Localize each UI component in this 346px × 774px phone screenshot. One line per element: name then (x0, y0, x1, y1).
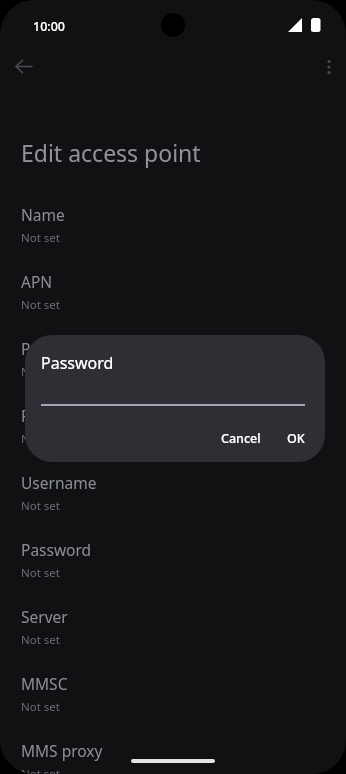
staticText: Not set (21, 766, 60, 774)
button[interactable]: Port (0, 402, 346, 460)
staticText: Password (41, 352, 114, 374)
staticText: Not set (21, 230, 60, 246)
staticText: Port (21, 405, 52, 426)
staticText: Not set (21, 431, 60, 447)
button[interactable]: MMS proxy (0, 737, 346, 774)
staticText: Not set (21, 297, 60, 313)
button[interactable]: More options (313, 51, 344, 82)
staticText: Not set (21, 364, 60, 380)
staticText: Not set (21, 632, 60, 648)
staticText: 10:00 (33, 18, 66, 35)
staticText: Cancel (221, 430, 261, 447)
staticText: OK (287, 430, 305, 447)
button[interactable]: Password (0, 536, 346, 594)
staticText: Proxy (21, 338, 62, 359)
button[interactable]: Username (0, 469, 346, 527)
staticText: APN (21, 271, 53, 292)
staticText: MMSC (21, 673, 68, 694)
staticText: Server (21, 606, 68, 627)
button[interactable]: APN (0, 268, 346, 326)
staticText: Edit access point (21, 137, 201, 168)
staticText: Not set (21, 498, 60, 514)
button[interactable]: OK (276, 423, 316, 454)
button[interactable]: Name (0, 201, 346, 259)
staticText: Name (21, 204, 65, 225)
button[interactable]: Cancel (210, 423, 272, 454)
staticText: Not set (21, 565, 60, 581)
staticText: Not set (21, 699, 60, 715)
button[interactable]: Server (0, 603, 346, 661)
button[interactable]: Back (8, 51, 39, 82)
staticText: Password (21, 539, 92, 560)
button[interactable]: MMSC (0, 670, 346, 728)
staticText: Username (21, 472, 97, 493)
staticText: MMS proxy (21, 740, 103, 761)
button[interactable]: Proxy (0, 335, 346, 393)
